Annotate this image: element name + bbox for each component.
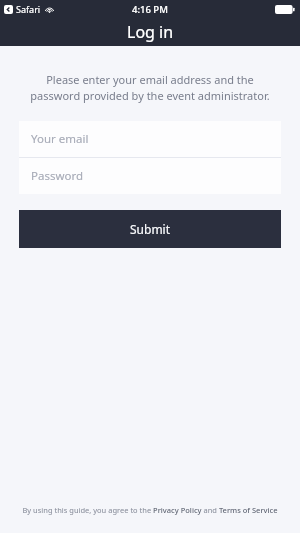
button[interactable]: Submit — [19, 210, 281, 248]
button[interactable]: By using this guide, you agree to the Pr… — [14, 505, 286, 515]
other: Back to Safari — [4, 5, 13, 14]
staticText: Submit — [130, 221, 171, 237]
staticText: 4:16 PM — [132, 3, 168, 16]
staticText: Please enter your email address and the … — [22, 72, 278, 103]
button[interactable]: Password — [19, 158, 281, 194]
staticText: Log in — [127, 21, 174, 43]
button[interactable]: Your email — [19, 121, 281, 157]
staticText: Safari — [16, 3, 41, 15]
staticText: Password — [31, 168, 84, 184]
staticText: Your email — [31, 131, 89, 147]
staticText: By using this guide, you agree to the Pr… — [14, 505, 286, 515]
